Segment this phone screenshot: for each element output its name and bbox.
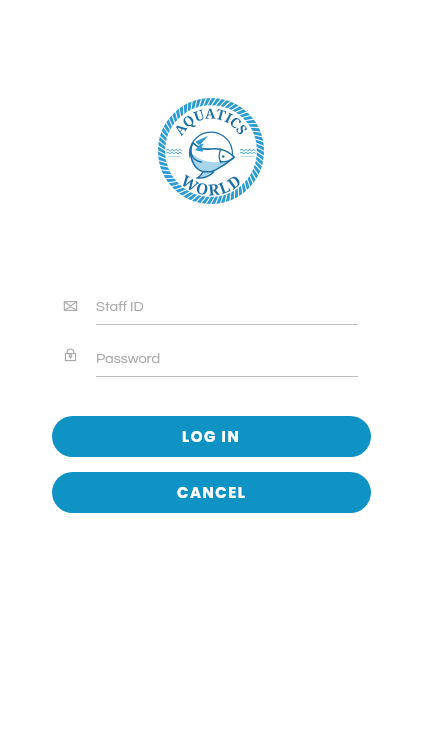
- button[interactable]: CANCEL: [52, 472, 371, 513]
- staticText: Staff ID: [96, 299, 144, 314]
- button[interactable]: LOG IN: [52, 416, 371, 457]
- staticText: LOG IN: [182, 426, 241, 447]
- staticText: Password: [96, 351, 161, 366]
- staticText: CANCEL: [177, 482, 247, 503]
- other: Password: [64, 347, 77, 361]
- other: Staff ID: [64, 299, 77, 313]
